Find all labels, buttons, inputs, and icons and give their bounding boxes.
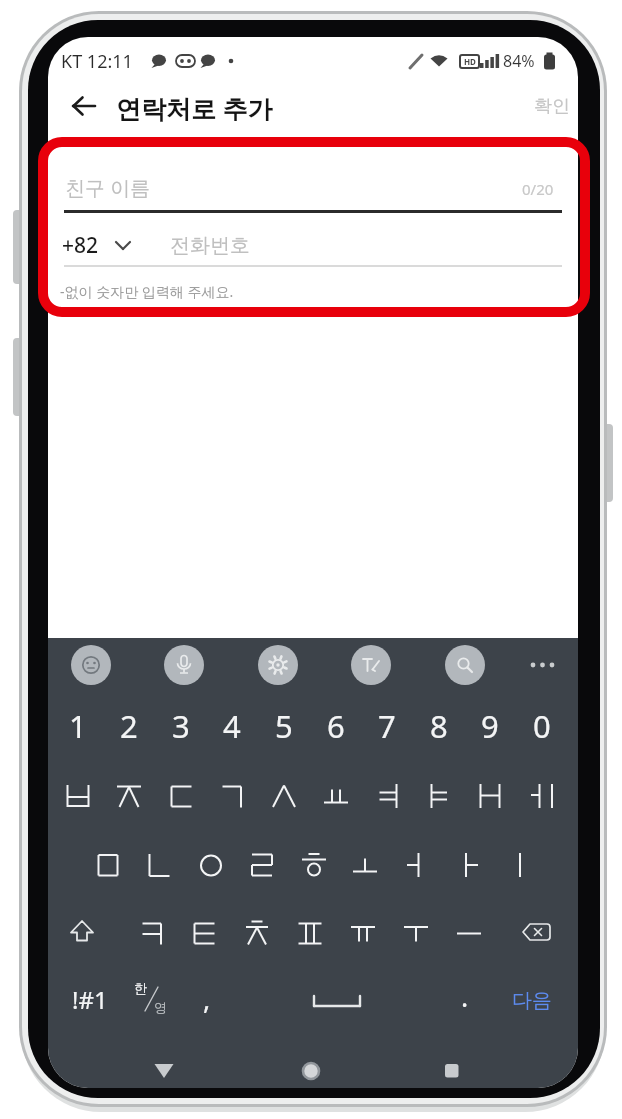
staticText: 0 [533,705,551,747]
button[interactable] [260,774,308,818]
staticText: 다음 [512,988,552,1013]
button[interactable] [339,911,387,955]
staticText: 84% [503,50,535,72]
button[interactable] [54,774,102,818]
button[interactable] [341,843,389,887]
button[interactable] [71,645,111,685]
staticText: 8 [430,705,448,747]
button[interactable] [363,774,411,818]
button[interactable]: 0 [517,702,567,750]
button[interactable]: !#1 [48,975,139,1023]
button[interactable] [415,774,463,818]
button[interactable] [393,843,441,887]
button[interactable] [157,774,205,818]
button[interactable] [164,645,204,685]
staticText: HD [464,56,476,67]
button[interactable]: 5 [259,702,309,750]
staticText: , [203,980,211,1017]
button[interactable] [444,843,492,887]
staticText: 5 [275,705,293,747]
staticText: 연락처로 추가 [116,91,273,123]
button[interactable] [307,982,367,1018]
staticText: KT 12:11 [61,49,133,73]
button[interactable] [208,774,256,818]
staticText: 친구 이름 [65,174,151,201]
button[interactable]: 8 [414,702,464,750]
button[interactable] [293,1058,329,1084]
staticText: 영 [154,999,167,1015]
button[interactable] [72,94,96,118]
button[interactable] [238,843,286,887]
button[interactable] [135,843,183,887]
staticText: 1 [69,705,87,747]
button[interactable] [434,1058,470,1084]
staticText: 7 [378,705,396,747]
button[interactable] [60,910,104,954]
staticText: . [461,978,469,1015]
staticText: 전화번호 [170,233,250,258]
button[interactable] [128,911,176,955]
staticText: 0/20 [522,179,554,199]
staticText: 9 [481,705,499,747]
staticText: 4 [223,705,241,747]
button[interactable] [112,235,134,255]
button[interactable] [445,911,493,955]
button[interactable]: 다음 [499,978,565,1022]
button[interactable] [233,911,281,955]
button[interactable] [187,843,235,887]
button[interactable] [496,843,544,887]
button[interactable]: 2 [104,702,154,750]
staticText: !#1 [72,983,108,1016]
button[interactable]: 7 [362,702,412,750]
staticText: 2 [120,705,138,747]
staticText: -없이 숫자만 입력해 주세요. [60,282,234,301]
button[interactable] [514,910,558,954]
button[interactable]: 6 [311,702,361,750]
button[interactable] [529,655,559,675]
button[interactable] [290,843,338,887]
button[interactable]: . [438,971,491,1022]
button[interactable]: , [180,973,233,1024]
button[interactable]: 1 [53,702,103,750]
staticText: 3 [172,705,190,747]
button[interactable] [286,911,334,955]
button[interactable]: 3 [156,702,206,750]
button[interactable]: 4 [207,702,257,750]
staticText: +82 [62,231,99,259]
button[interactable] [84,843,132,887]
button[interactable]: 확인 [522,93,570,119]
button[interactable]: 한 [132,980,172,1020]
button[interactable] [146,1058,182,1084]
button[interactable] [518,774,566,818]
staticText: 한 [134,980,147,996]
button[interactable] [312,774,360,818]
button[interactable] [351,645,391,685]
button[interactable] [258,645,298,685]
button[interactable] [105,774,153,818]
staticText: 확인 [534,95,570,118]
button[interactable] [180,911,228,955]
button[interactable] [466,774,514,818]
button[interactable]: 9 [465,702,515,750]
staticText: 6 [327,705,345,747]
button[interactable] [445,645,485,685]
button[interactable] [392,911,440,955]
